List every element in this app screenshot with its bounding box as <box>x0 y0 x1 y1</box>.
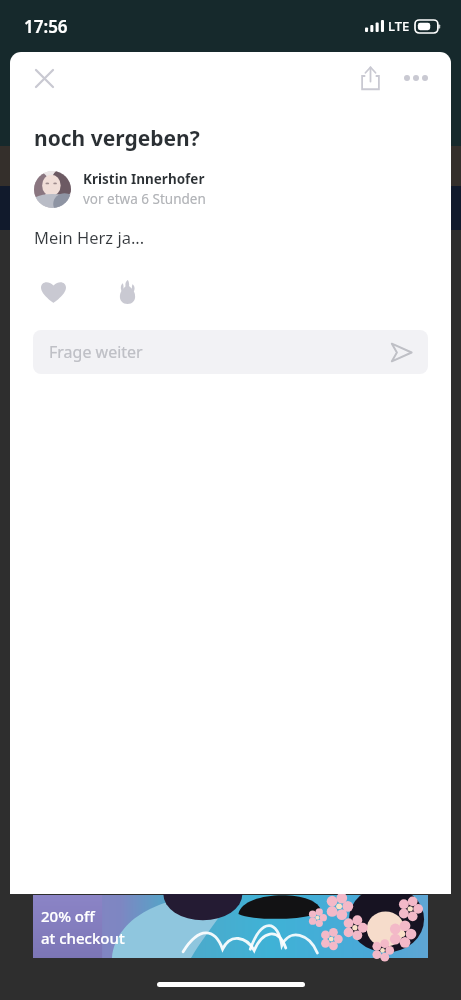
staticText: noch vergeben? <box>34 124 200 153</box>
button[interactable]: More options <box>393 55 439 101</box>
staticText: Kristin Innerhofer <box>83 170 205 188</box>
staticText: Mein Herz ja... <box>34 226 145 248</box>
button[interactable]: Close <box>22 56 66 100</box>
button[interactable]: Kristin Innerhofer <box>10 170 451 208</box>
button[interactable]: Like <box>28 270 78 314</box>
staticText: at checkout <box>41 928 125 948</box>
staticText: 17:56 <box>24 15 68 38</box>
button[interactable]: Advertisement <box>33 895 428 958</box>
staticText: vor etwa 6 Stunden <box>83 190 206 208</box>
staticText: 20% off <box>41 906 95 926</box>
button[interactable]: Frage weiter <box>33 330 428 374</box>
staticText: LTE <box>388 17 410 35</box>
staticText: Frage weiter <box>49 341 143 363</box>
button[interactable]: Fire reaction <box>102 270 152 314</box>
button[interactable]: Share <box>347 55 393 101</box>
